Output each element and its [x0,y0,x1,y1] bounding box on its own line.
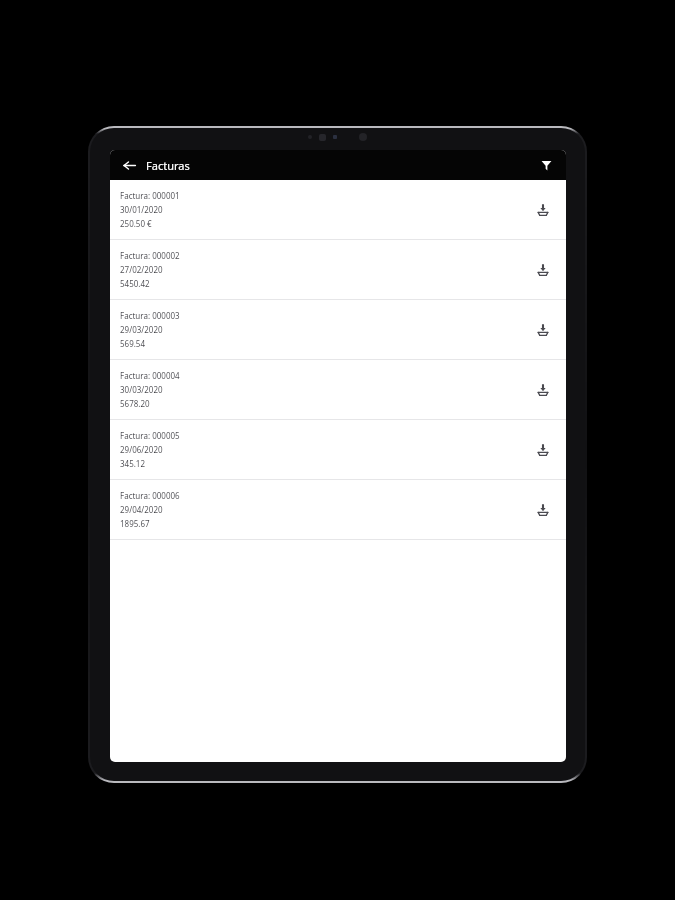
staticText: 569.54 [120,338,146,349]
button[interactable]: Download invoice [530,437,556,463]
staticText: 250.50 € [120,218,152,229]
button[interactable]: Factura: 000005 [110,420,566,479]
staticText: 1895.67 [120,518,150,529]
button[interactable]: Download invoice [530,497,556,523]
staticText: Factura: 000002 [120,250,180,261]
staticText: 345.12 [120,458,146,469]
staticText: Factura: 000001 [120,190,180,201]
button[interactable]: Download invoice [530,317,556,343]
button[interactable]: Download invoice [530,257,556,283]
button[interactable]: Factura: 000001 [110,180,566,239]
staticText: Factura: 000005 [120,430,180,441]
button[interactable]: Download invoice [530,197,556,223]
button[interactable]: Factura: 000006 [110,480,566,539]
staticText: Factura: 000004 [120,370,180,381]
button[interactable]: Factura: 000002 [110,240,566,299]
staticText: Factura: 000006 [120,490,180,501]
button[interactable]: Back [116,152,142,178]
staticText: 5450.42 [120,278,150,289]
staticText: 29/03/2020 [120,324,163,335]
button[interactable]: Factura: 000004 [110,360,566,419]
staticText: 30/03/2020 [120,384,163,395]
button[interactable]: Factura: 000003 [110,300,566,359]
staticText: 5678.20 [120,398,150,409]
staticText: 29/04/2020 [120,504,163,515]
staticText: 27/02/2020 [120,264,163,275]
button[interactable]: Filter [534,153,558,177]
staticText: 29/06/2020 [120,444,163,455]
staticText: Facturas [146,158,190,173]
staticText: 30/01/2020 [120,204,163,215]
staticText: Factura: 000003 [120,310,180,321]
button[interactable]: Download invoice [530,377,556,403]
